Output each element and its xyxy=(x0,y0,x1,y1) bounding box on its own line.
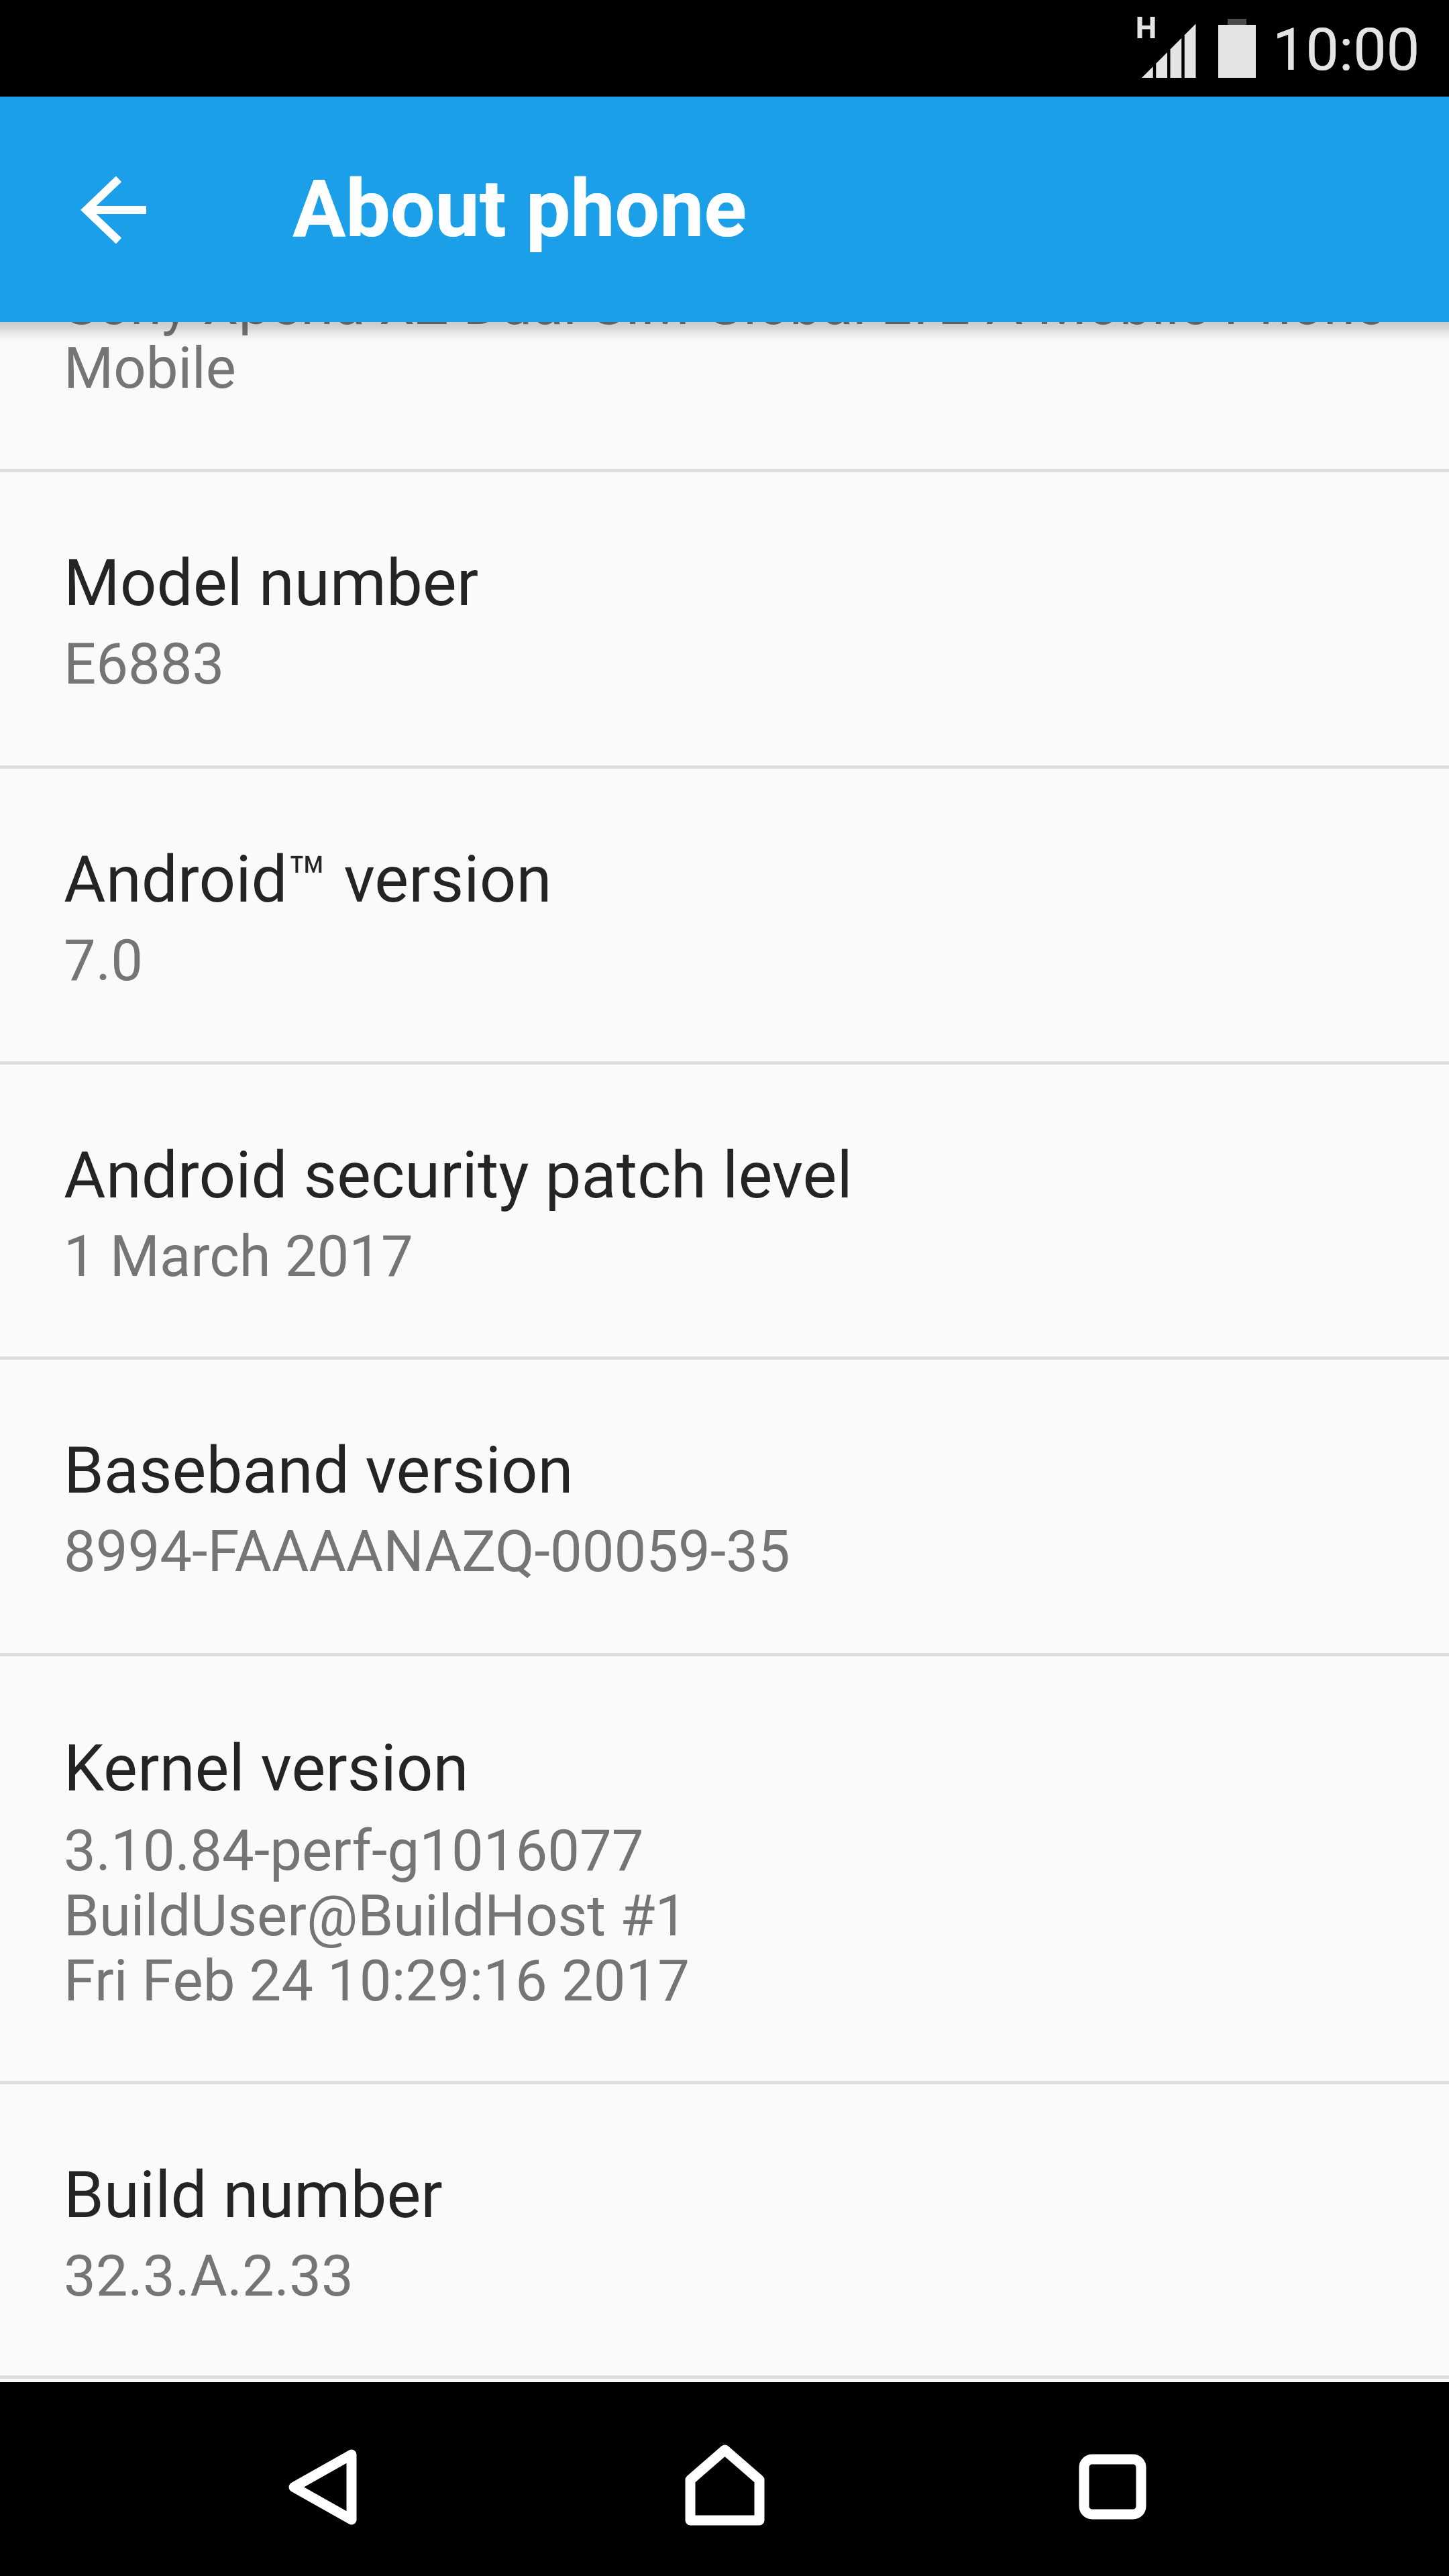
button[interactable]: Sony Xperia XZ Dual SIM Global LTE-A Mob… xyxy=(0,322,1449,469)
staticText: 8994-FAAAANAZQ-00059-35 xyxy=(64,1518,790,1585)
staticText: Baseband version xyxy=(64,1433,574,1509)
staticText: Mobile xyxy=(64,335,236,402)
staticText: H xyxy=(1136,11,1157,46)
staticText: E6883 xyxy=(64,631,225,698)
button[interactable]: Build number xyxy=(0,2084,1449,2375)
button[interactable]: Android security patch level xyxy=(0,1065,1449,1356)
button[interactable]: Navigate up xyxy=(35,129,196,290)
staticText: About phone xyxy=(292,163,747,256)
button[interactable]: Back xyxy=(235,2400,410,2574)
staticText: 3.10.84-perf-g1016077 BuildUser@BuildHos… xyxy=(64,1817,690,2015)
button[interactable]: Model number xyxy=(0,472,1449,765)
button[interactable]: Kernel version xyxy=(0,1656,1449,2081)
button[interactable]: Home xyxy=(637,2398,812,2572)
staticText: Android™ version xyxy=(64,842,552,918)
staticText: 32.3.A.2.33 xyxy=(64,2243,354,2310)
staticText: Sony Xperia XZ Dual SIM Global LTE-A Mob… xyxy=(64,322,1385,338)
staticText: Kernel version xyxy=(64,1731,469,1807)
staticText: 7.0 xyxy=(64,927,143,994)
staticText: Android security patch level xyxy=(64,1138,853,1214)
staticText: 10:00 xyxy=(1273,15,1420,84)
button[interactable]: Baseband version xyxy=(0,1360,1449,1653)
button[interactable]: Android™ version xyxy=(0,769,1449,1061)
staticText: Model number xyxy=(64,545,479,621)
button[interactable]: Recent apps xyxy=(1025,2400,1199,2574)
staticText: 1 March 2017 xyxy=(64,1223,413,1290)
staticText: Build number xyxy=(64,2157,443,2233)
